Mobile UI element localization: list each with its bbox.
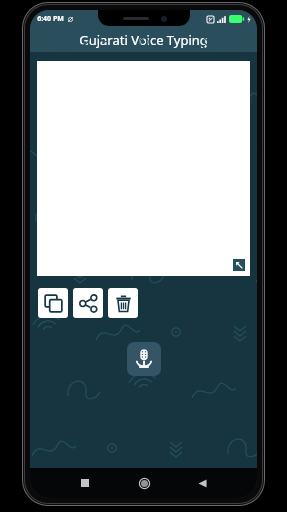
button[interactable]: Resize (37, 61, 250, 276)
button[interactable]: Start voice typing (127, 342, 161, 376)
button[interactable]: Copy (38, 288, 68, 318)
button[interactable]: Home (133, 472, 155, 494)
button[interactable]: Delete (108, 288, 138, 318)
button[interactable]: Back (191, 472, 213, 494)
button[interactable]: Resize (233, 259, 245, 271)
button[interactable]: Share (73, 288, 103, 318)
staticText: 6:40 PM (37, 14, 64, 24)
button[interactable]: Recents (74, 472, 96, 494)
staticText: Gujarati Voice Typing (79, 31, 208, 49)
